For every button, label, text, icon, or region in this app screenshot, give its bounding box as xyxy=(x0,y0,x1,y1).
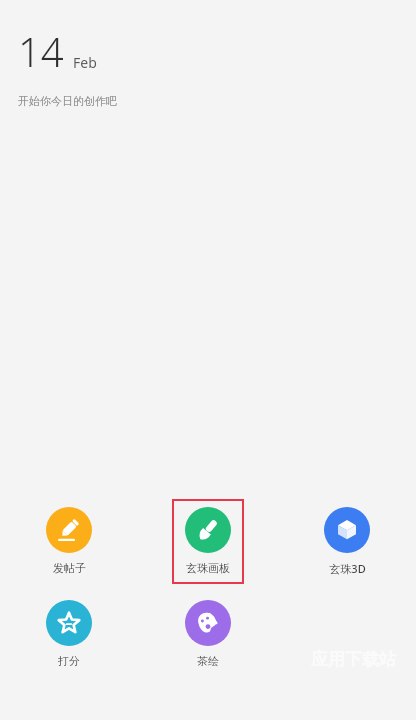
button[interactable]: 发帖子 xyxy=(33,499,105,584)
staticText: Feb xyxy=(73,53,97,72)
other: 茶绘 xyxy=(185,600,231,646)
other: 玄珠3D xyxy=(324,507,370,553)
staticText: 茶绘 xyxy=(197,654,219,668)
button[interactable]: 茶绘 xyxy=(172,592,244,677)
other: 玄珠画板 xyxy=(185,507,231,553)
staticText: 14 xyxy=(18,24,64,78)
button[interactable]: 玄珠画板 xyxy=(172,499,244,584)
staticText: 打分 xyxy=(58,654,80,668)
button[interactable]: 玄珠3D xyxy=(311,499,383,585)
other: 发帖子 xyxy=(46,507,92,553)
staticText: 开始你今日的创作吧 xyxy=(18,94,117,108)
staticText: 玄珠3D xyxy=(329,561,366,576)
button[interactable]: 打分 xyxy=(33,592,105,677)
staticText: 发帖子 xyxy=(53,561,86,575)
other: 打分 xyxy=(46,600,92,646)
staticText: 玄珠画板 xyxy=(186,561,230,575)
